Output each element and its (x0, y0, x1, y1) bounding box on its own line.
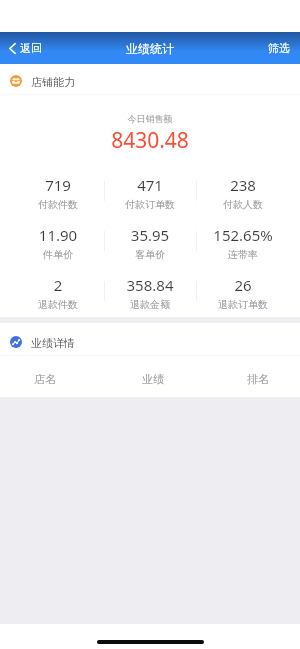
button[interactable]: 35.95 (104, 223, 196, 257)
staticText: 退款订单数 (197, 298, 289, 311)
staticText: 业绩 (103, 372, 203, 386)
staticText: 返回 (20, 41, 42, 55)
button[interactable]: 471 (104, 173, 196, 207)
staticText: 35.95 (104, 225, 196, 245)
staticText: 付款订单数 (104, 198, 196, 211)
button[interactable]: 11.90 (12, 223, 104, 257)
staticText: 筛选 (268, 41, 290, 55)
staticText: 退款金额 (104, 298, 196, 311)
staticText: 付款人数 (197, 198, 289, 211)
button[interactable]: 358.84 (104, 273, 196, 307)
staticText: 排名 (208, 372, 300, 386)
staticText: 238 (197, 175, 289, 195)
staticText: 11.90 (12, 225, 104, 245)
button[interactable]: 238 (197, 173, 289, 207)
staticText: 358.84 (104, 275, 196, 295)
button[interactable]: 返回 (0, 36, 52, 60)
staticText: 件单价 (12, 248, 104, 261)
button[interactable]: 筛选 (258, 35, 300, 61)
button[interactable]: 26 (197, 273, 289, 307)
staticText: 8430.48 (0, 126, 300, 155)
staticText: 471 (104, 175, 196, 195)
staticText: 152.65% (197, 225, 289, 245)
staticText: 26 (197, 275, 289, 295)
button[interactable]: 2 (12, 273, 104, 307)
staticText: 客单价 (104, 248, 196, 261)
staticText: 店铺能力 (31, 75, 75, 89)
staticText: 719 (12, 175, 104, 195)
staticText: 退款件数 (12, 298, 104, 311)
staticText: 连带率 (197, 248, 289, 261)
staticText: 业绩统计 (126, 41, 174, 56)
staticText: 今日销售额 (0, 113, 300, 124)
button[interactable]: 719 (12, 173, 104, 207)
button[interactable]: 152.65% (197, 223, 289, 257)
staticText: 店名 (0, 372, 95, 386)
button[interactable]: 业绩详情 (0, 329, 300, 355)
staticText: 2 (12, 275, 104, 295)
staticText: 付款件数 (12, 198, 104, 211)
button[interactable]: 店铺能力 (0, 68, 300, 94)
staticText: 业绩详情 (31, 336, 75, 350)
other: Home indicator (0, 624, 300, 649)
